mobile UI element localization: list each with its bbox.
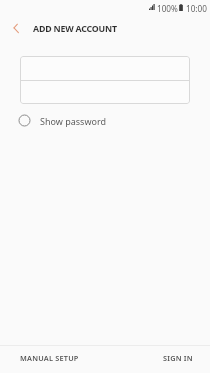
button[interactable]: MANUAL SETUP <box>0 344 100 371</box>
staticText: 10:00 <box>186 3 207 14</box>
staticText: ADD NEW ACCOUNT <box>33 23 117 35</box>
button[interactable]: SIGN IN <box>100 344 210 371</box>
button[interactable]: Email address <box>20 56 190 80</box>
staticText: SIGN IN <box>163 353 193 363</box>
button[interactable]: Show password <box>18 112 106 129</box>
button[interactable]: Password <box>20 81 190 104</box>
staticText: Show password <box>40 115 106 127</box>
staticText: 100% <box>157 3 178 14</box>
staticText: MANUAL SETUP <box>20 353 79 363</box>
button[interactable]: Navigate up <box>4 16 28 40</box>
